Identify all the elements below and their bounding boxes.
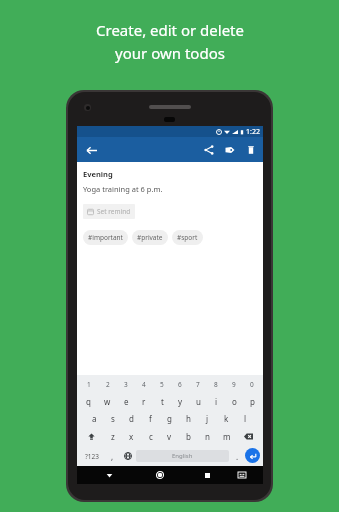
button[interactable]: r: [135, 395, 153, 407]
button[interactable]: g: [160, 412, 179, 425]
button[interactable]: Backspace: [236, 430, 261, 443]
button[interactable]: 3: [117, 378, 135, 390]
button[interactable]: Shift: [79, 430, 103, 443]
button[interactable]: Enter: [245, 448, 260, 463]
staticText: 5: [160, 380, 164, 389]
button[interactable]: k: [217, 412, 236, 425]
staticText: b: [186, 431, 191, 442]
button[interactable]: Back: [81, 140, 101, 160]
button[interactable]: m: [217, 430, 236, 443]
staticText: 4: [142, 380, 146, 389]
button[interactable]: y: [171, 395, 189, 407]
button[interactable]: Back: [100, 466, 118, 484]
staticText: a: [92, 413, 97, 424]
staticText: 8: [214, 380, 218, 389]
staticText: #important: [88, 233, 123, 242]
button[interactable]: Set remind: [83, 204, 135, 219]
staticText: ?123: [85, 452, 99, 461]
button[interactable]: Home: [151, 466, 169, 484]
button[interactable]: .: [229, 449, 245, 463]
button[interactable]: #sport: [172, 230, 203, 245]
button[interactable]: o: [225, 395, 243, 407]
staticText: r: [142, 396, 146, 407]
button[interactable]: n: [198, 430, 217, 443]
button[interactable]: b: [179, 430, 198, 443]
button[interactable]: c: [141, 430, 160, 443]
staticText: m: [223, 431, 231, 442]
staticText: 0: [250, 380, 254, 389]
staticText: f: [149, 413, 152, 424]
button[interactable]: 1: [79, 378, 98, 390]
staticText: #private: [137, 233, 163, 242]
staticText: 7: [196, 380, 200, 389]
button[interactable]: a: [85, 412, 103, 425]
button[interactable]: z: [103, 430, 122, 443]
staticText: t: [161, 396, 164, 407]
staticText: English: [172, 452, 193, 460]
staticText: your own todos: [115, 43, 225, 63]
button[interactable]: j: [198, 412, 217, 425]
button[interactable]: #important: [83, 230, 128, 245]
staticText: s: [111, 413, 115, 424]
button[interactable]: 9: [225, 378, 243, 390]
staticText: n: [205, 431, 210, 442]
button[interactable]: Recent apps: [198, 466, 216, 484]
staticText: i: [215, 396, 218, 407]
staticText: 6: [178, 380, 182, 389]
staticText: j: [206, 413, 209, 424]
button[interactable]: u: [189, 395, 207, 407]
button[interactable]: 4: [135, 378, 153, 390]
staticText: d: [129, 413, 134, 424]
staticText: g: [167, 413, 172, 424]
staticText: ,: [111, 451, 114, 462]
staticText: 2: [106, 380, 110, 389]
staticText: 1:22: [246, 127, 260, 137]
staticText: l: [244, 413, 247, 424]
button[interactable]: h: [179, 412, 198, 425]
button[interactable]: 5: [153, 378, 171, 390]
staticText: u: [196, 396, 201, 407]
button[interactable]: #private: [132, 230, 168, 245]
button[interactable]: Change language: [120, 449, 136, 463]
button[interactable]: t: [153, 395, 171, 407]
staticText: c: [149, 431, 153, 442]
staticText: w: [104, 396, 111, 407]
button[interactable]: ,: [104, 449, 120, 463]
button[interactable]: l: [236, 412, 255, 425]
staticText: .: [236, 451, 239, 462]
staticText: Evening: [83, 169, 113, 179]
staticText: 9: [232, 380, 236, 389]
staticText: z: [111, 431, 115, 442]
staticText: k: [224, 413, 229, 424]
button[interactable]: q: [79, 395, 98, 407]
button[interactable]: 2: [98, 378, 117, 390]
button[interactable]: 0: [243, 378, 261, 390]
button[interactable]: Edit tags: [220, 140, 239, 159]
button[interactable]: English: [136, 450, 229, 462]
button[interactable]: v: [160, 430, 179, 443]
button[interactable]: e: [117, 395, 135, 407]
button[interactable]: ?123: [80, 449, 104, 463]
staticText: #sport: [177, 233, 198, 242]
button[interactable]: w: [98, 395, 117, 407]
button[interactable]: Share: [199, 140, 218, 159]
button[interactable]: s: [103, 412, 122, 425]
button[interactable]: d: [122, 412, 141, 425]
button[interactable]: x: [122, 430, 141, 443]
staticText: 3: [124, 380, 128, 389]
button[interactable]: Delete: [241, 140, 260, 159]
button[interactable]: p: [243, 395, 261, 407]
staticText: q: [86, 396, 91, 407]
staticText: v: [167, 431, 172, 442]
button[interactable]: 8: [207, 378, 225, 390]
button[interactable]: 7: [189, 378, 207, 390]
staticText: x: [129, 431, 134, 442]
button[interactable]: i: [207, 395, 225, 407]
button[interactable]: f: [141, 412, 160, 425]
staticText: y: [178, 396, 183, 407]
staticText: h: [186, 413, 191, 424]
staticText: Set remind: [97, 207, 131, 216]
button[interactable]: Keyboard: [233, 466, 251, 484]
button[interactable]: 6: [171, 378, 189, 390]
staticText: o: [232, 396, 237, 407]
